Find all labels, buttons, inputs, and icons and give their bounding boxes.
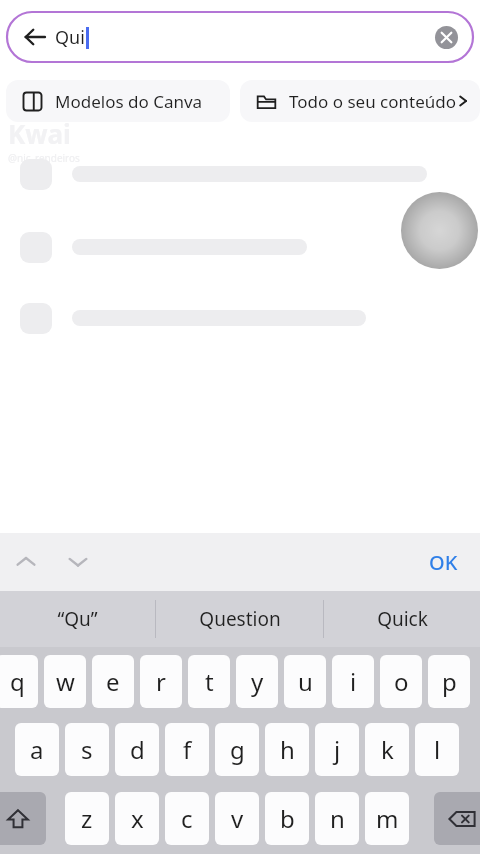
- staticText: m: [376, 802, 399, 835]
- button[interactable]: d: [115, 723, 159, 776]
- staticText: d: [130, 733, 145, 766]
- staticText: t: [205, 665, 214, 698]
- staticText: n: [330, 802, 345, 835]
- staticText: g: [230, 733, 245, 766]
- staticText: e: [106, 665, 120, 698]
- button[interactable]: k: [365, 723, 409, 776]
- staticText: v: [231, 802, 244, 835]
- staticText: k: [381, 733, 394, 766]
- button[interactable]: q: [0, 655, 38, 708]
- button[interactable]: i: [332, 655, 374, 708]
- button[interactable]: OK: [421, 543, 466, 582]
- button[interactable]: c: [165, 792, 209, 845]
- button[interactable]: y: [236, 655, 278, 708]
- button[interactable]: g: [215, 723, 259, 776]
- staticText: h: [280, 733, 295, 766]
- button[interactable]: Quick: [324, 591, 480, 647]
- staticText: f: [183, 733, 192, 766]
- button[interactable]: Modelos do Canva: [6, 80, 230, 122]
- staticText: q: [10, 665, 25, 698]
- button[interactable]: b: [265, 792, 309, 845]
- staticText: Todo o seu conteúdo: [289, 90, 456, 113]
- button[interactable]: p: [428, 655, 470, 708]
- staticText: a: [30, 733, 44, 766]
- button[interactable]: h: [265, 723, 309, 776]
- button[interactable]: v: [215, 792, 259, 845]
- staticText: s: [81, 733, 93, 766]
- button[interactable]: a: [15, 723, 59, 776]
- staticText: Qui: [55, 25, 85, 50]
- staticText: OK: [429, 549, 458, 576]
- button[interactable]: Shift: [0, 792, 46, 845]
- button[interactable]: t: [188, 655, 230, 708]
- staticText: i: [350, 665, 357, 698]
- staticText: Quick: [377, 606, 428, 632]
- staticText: Modelos do Canva: [55, 90, 203, 113]
- staticText: p: [442, 665, 457, 698]
- staticText: u: [298, 665, 313, 698]
- button[interactable]: Previous field: [6, 542, 46, 582]
- staticText: j: [334, 733, 341, 766]
- button[interactable]: n: [315, 792, 359, 845]
- staticText: l: [434, 733, 441, 766]
- staticText: “Qu”: [57, 606, 98, 632]
- staticText: r: [156, 665, 166, 698]
- button[interactable]: o: [380, 655, 422, 708]
- button[interactable]: x: [115, 792, 159, 845]
- staticText: w: [56, 665, 75, 698]
- staticText: x: [131, 802, 144, 835]
- button[interactable]: Question: [156, 591, 323, 647]
- button[interactable]: u: [284, 655, 326, 708]
- button[interactable]: Todo o seu conteúdo: [240, 80, 480, 122]
- staticText: b: [280, 802, 295, 835]
- button[interactable]: m: [365, 792, 409, 845]
- button[interactable]: Next field: [58, 542, 98, 582]
- button[interactable]: Back: [15, 17, 55, 57]
- staticText: @nic_rendeiros: [8, 151, 80, 165]
- button[interactable]: “Qu”: [0, 591, 155, 647]
- button[interactable]: j: [315, 723, 359, 776]
- button[interactable]: w: [44, 655, 86, 708]
- button[interactable]: f: [165, 723, 209, 776]
- button[interactable]: l: [415, 723, 459, 776]
- button[interactable]: Backspace: [434, 792, 480, 845]
- staticText: Question: [199, 606, 281, 632]
- button[interactable]: Clear: [431, 22, 461, 52]
- button[interactable]: s: [65, 723, 109, 776]
- button[interactable]: z: [65, 792, 109, 845]
- staticText: c: [181, 802, 193, 835]
- staticText: o: [394, 665, 409, 698]
- button[interactable]: e: [92, 655, 134, 708]
- button[interactable]: r: [140, 655, 182, 708]
- staticText: y: [251, 665, 264, 698]
- staticText: z: [81, 802, 93, 835]
- staticText: Kwai: [8, 116, 71, 151]
